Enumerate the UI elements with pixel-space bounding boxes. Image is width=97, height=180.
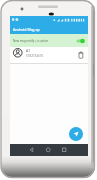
button[interactable]: New msg notify + is active — [10, 34, 88, 47]
button[interactable]: A1 — [10, 47, 88, 63]
staticText: 5782734676 — [26, 54, 44, 58]
button[interactable] — [69, 127, 83, 141]
staticText: A1 — [26, 48, 31, 53]
staticText: Android Msg ap — [13, 27, 40, 32]
button[interactable]: Android Msg ap — [10, 24, 88, 34]
staticText: New msg notify + is active — [13, 39, 73, 43]
